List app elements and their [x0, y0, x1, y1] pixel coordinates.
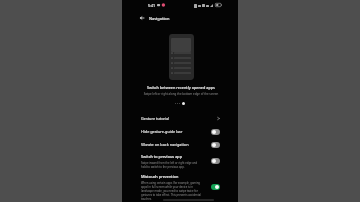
staticText: Swipe left or right along the bottom edg…	[123, 92, 239, 96]
staticText: Mistouch prevention	[141, 174, 179, 179]
button[interactable]: Switch to previous app	[122, 151, 238, 170]
staticText: Hide gesture-guide bar	[141, 129, 183, 134]
staticText: Swipe inward from the left or right edge…	[141, 161, 202, 169]
staticText: Gesture tutorial	[141, 116, 217, 121]
button[interactable]: Off	[211, 158, 220, 164]
staticText: Switch to previous app	[141, 154, 183, 159]
staticText: Navigation	[149, 16, 170, 21]
button[interactable]: Navigate up	[136, 12, 147, 23]
button[interactable]: Gesture tutorial	[122, 112, 238, 125]
button[interactable]: Mistouch prevention	[122, 170, 238, 202]
button[interactable]: Off	[211, 129, 220, 135]
staticText: When using certain apps (for example, ga…	[141, 181, 202, 201]
button[interactable]: Vibrate on back navigation	[122, 138, 238, 151]
staticText: Switch between recently opened apps	[123, 85, 239, 90]
staticText: 5:41	[148, 3, 156, 8]
staticText: Vibrate on back navigation	[141, 142, 189, 147]
button[interactable]: Hide gesture-guide bar	[122, 125, 238, 138]
button[interactable]: On	[211, 184, 220, 190]
button[interactable]: Off	[211, 142, 220, 148]
